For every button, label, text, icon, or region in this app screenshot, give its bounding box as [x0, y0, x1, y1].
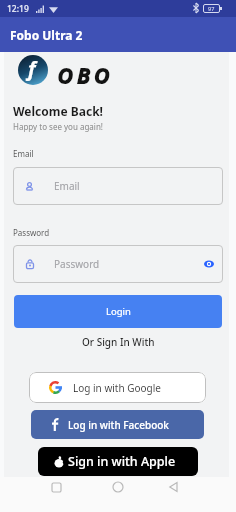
button[interactable]: Log in with Facebook [31, 410, 204, 439]
button[interactable] [48, 479, 64, 495]
staticText: Fobo Ultra 2 [10, 27, 83, 43]
staticText: OBO [58, 62, 114, 89]
staticText: 97 [208, 5, 215, 12]
button[interactable] [110, 479, 126, 495]
staticText: Login [106, 305, 131, 318]
staticText: Sign in with Apple [68, 453, 176, 470]
staticText: Password [54, 257, 100, 271]
staticText: f [28, 55, 36, 82]
button[interactable]: Email [13, 167, 223, 205]
staticText: Password [13, 227, 50, 238]
staticText: Or Sign In With [82, 335, 155, 349]
staticText: Email [13, 148, 34, 159]
button[interactable]: Login [14, 295, 222, 328]
button[interactable]: Sign in with Apple [38, 447, 198, 476]
staticText: Welcome Back! [13, 103, 103, 119]
button[interactable]: Log in with Google [29, 372, 206, 403]
staticText: Email [54, 179, 80, 193]
staticText: Happy to see you again! [13, 121, 103, 132]
button[interactable] [165, 479, 181, 495]
button[interactable]: Password [13, 245, 223, 283]
staticText: 12:19 [7, 3, 29, 15]
staticText: Log in with Google [73, 381, 161, 395]
staticText: Log in with Facebook [68, 418, 169, 432]
